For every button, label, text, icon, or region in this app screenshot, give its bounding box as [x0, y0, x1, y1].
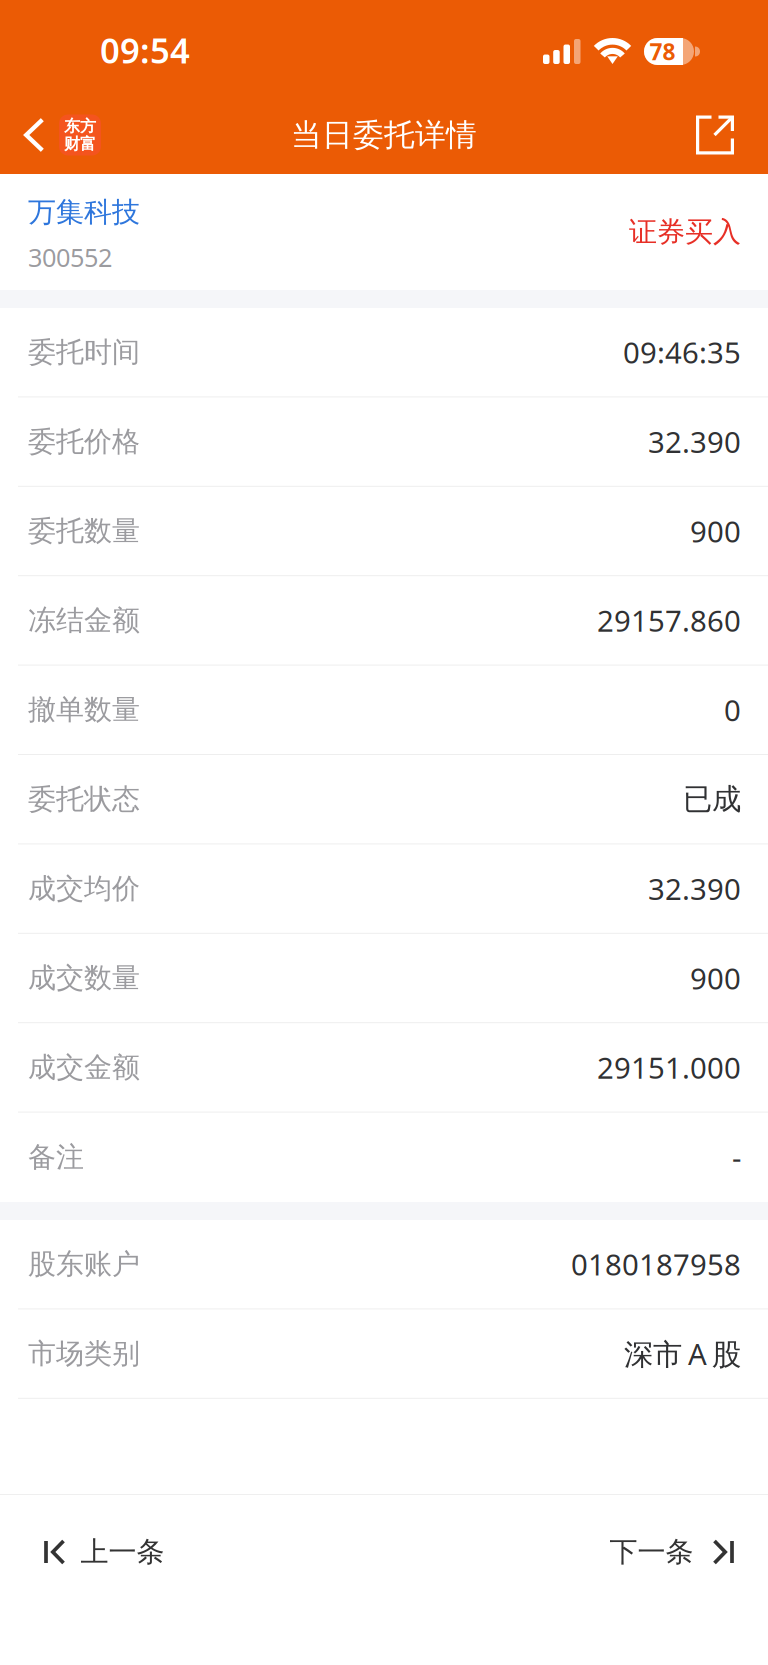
- staticText: 股东账户: [28, 1247, 140, 1281]
- staticText: 32.390: [648, 869, 741, 908]
- staticText: 财富: [64, 134, 96, 154]
- staticText: 深市 A 股: [624, 1334, 741, 1373]
- staticText: 成交均价: [28, 871, 140, 906]
- staticText: 32.390: [648, 422, 741, 461]
- button[interactable]: Next: [585, 1495, 768, 1609]
- staticText: 成交数量: [28, 961, 140, 995]
- staticText: 当日委托详情: [291, 116, 477, 154]
- staticText: 东方: [64, 116, 96, 136]
- staticText: 委托状态: [28, 782, 140, 816]
- staticText: 成交金额: [28, 1050, 140, 1085]
- staticText: 已成: [683, 781, 741, 817]
- staticText: 29151.000: [597, 1048, 741, 1087]
- staticText: 上一条: [80, 1535, 164, 1569]
- staticText: 300552: [28, 240, 112, 274]
- staticText: 万集科技: [28, 195, 140, 229]
- staticText: 78: [649, 36, 675, 66]
- staticText: 900: [690, 958, 741, 997]
- staticText: 900: [690, 511, 741, 550]
- staticText: 市场类别: [28, 1336, 140, 1371]
- staticText: 撤单数量: [28, 693, 140, 727]
- staticText: 0180187958: [571, 1245, 741, 1284]
- button[interactable]: Back: [0, 90, 113, 174]
- staticText: 09:54: [100, 27, 190, 73]
- staticText: 09:46:35: [623, 333, 741, 372]
- staticText: 备注: [28, 1140, 84, 1174]
- staticText: 证券买入: [629, 215, 741, 249]
- button[interactable]: 上一条: [0, 1495, 188, 1609]
- staticText: 29157.860: [597, 601, 741, 640]
- staticText: 委托价格: [28, 424, 140, 459]
- staticText: 下一条: [609, 1535, 693, 1569]
- staticText: -: [732, 1138, 741, 1177]
- staticText: 0: [724, 690, 741, 729]
- button[interactable]: Share: [682, 90, 768, 174]
- staticText: 委托时间: [28, 335, 140, 369]
- staticText: 冻结金额: [28, 603, 140, 638]
- staticText: 委托数量: [28, 514, 140, 548]
